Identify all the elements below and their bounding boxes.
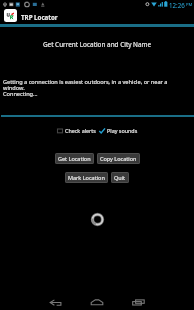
button[interactable]: Back [36,290,76,310]
button[interactable]: Quit [111,172,129,183]
button[interactable]: Mark Location [65,172,108,183]
staticText: 12:26 [169,1,185,9]
staticText: Get Current Location and City Name [0,40,194,49]
staticText: TRP Locator [21,13,58,21]
staticText: Mark Location [68,174,105,181]
staticText: Get Location [58,155,91,162]
staticText: Check alerts [65,127,96,134]
staticText: Copy Location [100,155,137,162]
button[interactable]: Recent apps [119,290,159,310]
button[interactable]: Play sounds [99,127,138,134]
staticText: Play sounds [107,127,138,134]
button[interactable]: Home [77,290,117,310]
button[interactable]: Copy Location [97,153,140,164]
staticText: Getting a connection is easiest outdoors… [3,78,168,98]
button[interactable]: Check alerts [57,127,96,134]
button[interactable]: App logo [4,9,17,22]
button[interactable]: Get Location [55,153,94,164]
staticText: PM [186,2,193,8]
staticText: Quit [114,174,126,181]
